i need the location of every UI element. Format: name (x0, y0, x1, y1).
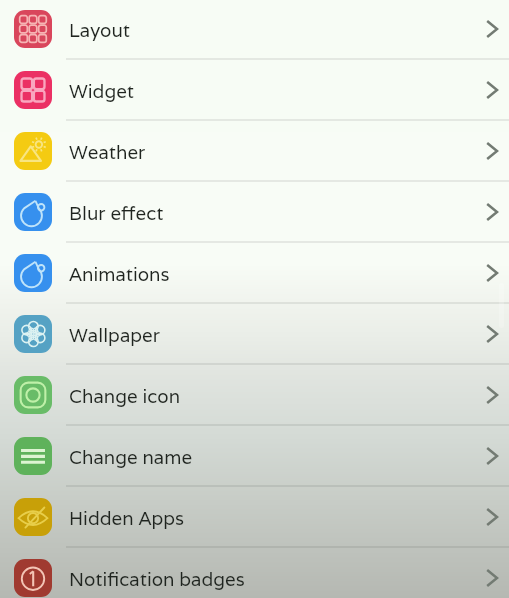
other: Open Wallpaper (478, 320, 506, 348)
staticText: Change name (69, 445, 193, 469)
staticText: Change icon (69, 384, 181, 408)
other: Open Weather (478, 137, 506, 165)
button[interactable]: Layout (0, 0, 509, 61)
staticText: Notification badges (69, 567, 245, 591)
button[interactable]: Widget (0, 61, 509, 122)
button[interactable]: Change icon (0, 366, 509, 427)
other: Open Change name (478, 442, 506, 470)
button[interactable]: Weather (0, 122, 509, 183)
staticText: Weather (69, 140, 146, 164)
button[interactable]: Blur effect (0, 183, 509, 244)
other: Open Change icon (478, 381, 506, 409)
staticText: Layout (69, 18, 131, 42)
button[interactable]: Wallpaper (0, 305, 509, 366)
staticText: Blur effect (69, 201, 164, 225)
button[interactable]: Hidden Apps (0, 488, 509, 549)
other: Open Animations (478, 259, 506, 287)
staticText: Animations (69, 262, 170, 286)
button[interactable]: Notification badges (0, 549, 509, 598)
button[interactable]: Animations (0, 244, 509, 305)
other: Open Notification badges (478, 564, 506, 592)
button[interactable]: Change name (0, 427, 509, 488)
other: Open Blur effect (478, 198, 506, 226)
staticText: Widget (69, 79, 135, 103)
other: Open Layout (478, 15, 506, 43)
staticText: Hidden Apps (69, 506, 184, 530)
other: Open Widget (478, 76, 506, 104)
other: Open Hidden Apps (478, 503, 506, 531)
staticText: Wallpaper (69, 323, 160, 347)
